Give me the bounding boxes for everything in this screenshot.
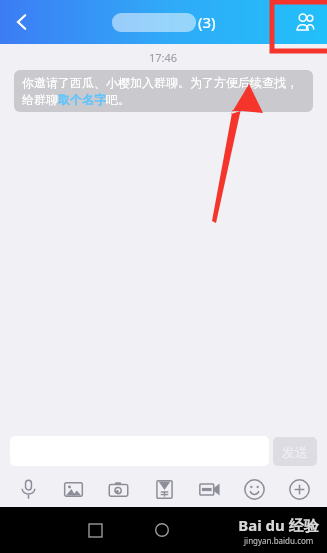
staticText: 你邀请了西瓜、小樱加入群聊。为了方便后续查找，给群聊取个名字吧。 bbox=[22, 75, 305, 107]
button[interactable]: Photo bbox=[56, 472, 90, 506]
button[interactable]: 你邀请了西瓜、小樱加入群聊。为了方便后续查找，给群聊取个名字吧。 bbox=[14, 70, 313, 112]
staticText: (3) bbox=[198, 12, 216, 32]
button[interactable]: Back bbox=[0, 0, 44, 44]
staticText: 17:46 bbox=[149, 50, 178, 65]
staticText: jingyan.baidu.com bbox=[244, 535, 314, 546]
button[interactable]: Red packet bbox=[147, 472, 181, 506]
staticText: 发送 bbox=[282, 444, 308, 460]
button[interactable]: Recents bbox=[78, 513, 112, 547]
staticText: Bai du 经验 bbox=[238, 515, 319, 535]
button[interactable]: Emoji bbox=[237, 472, 271, 506]
button[interactable]: More bbox=[282, 472, 316, 506]
button[interactable]: GIF bbox=[192, 472, 226, 506]
button[interactable]: Camera bbox=[101, 472, 135, 506]
button[interactable]: 发送 bbox=[273, 437, 317, 466]
button[interactable]: Home bbox=[145, 513, 179, 547]
button[interactable]: Voice message bbox=[11, 472, 45, 506]
button[interactable]: Group members bbox=[283, 0, 327, 44]
